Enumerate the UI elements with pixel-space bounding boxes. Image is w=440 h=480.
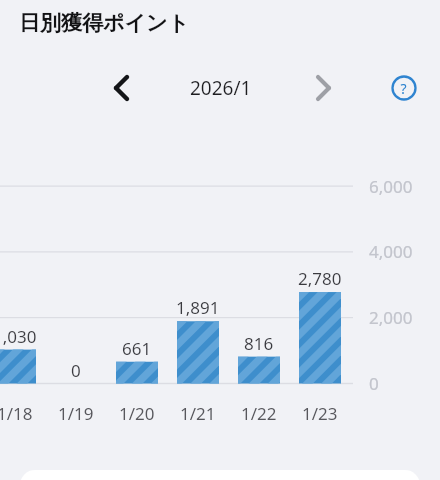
button[interactable]: Help xyxy=(383,67,425,109)
button[interactable]: Next month xyxy=(301,68,343,110)
button[interactable]: Previous month xyxy=(100,68,142,110)
